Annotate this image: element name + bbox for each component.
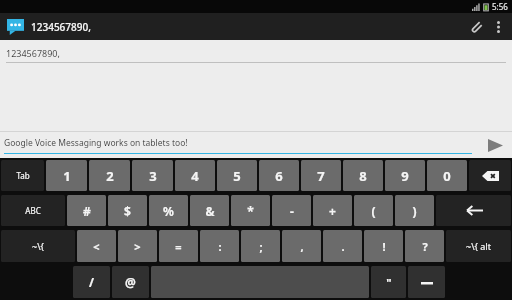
staticText: Tab [16,170,30,181]
staticText: " [386,275,392,290]
staticText: ? [422,239,428,254]
button[interactable]: , [282,230,321,262]
button[interactable]: % [149,195,188,226]
button[interactable]: / [73,266,110,298]
staticText: = [175,239,182,254]
button[interactable]: ; [241,230,280,262]
button[interactable]: 5 [217,160,257,191]
staticText: ! [382,239,386,254]
staticText: + [329,203,336,219]
staticText: * [247,203,254,219]
button[interactable]: 8 [343,160,383,191]
button[interactable]: ) [395,195,434,226]
button[interactable]: 4 [175,160,215,191]
staticText: / [89,274,94,290]
staticText: < [93,239,100,254]
staticText: . [341,239,345,254]
staticText: > [134,239,141,254]
staticText: : [218,239,222,254]
staticText: 6 [275,167,283,185]
staticText: , [300,239,304,254]
staticText: 9 [401,167,409,185]
button[interactable]: 7 [301,160,341,191]
staticText: 5:56 [492,1,508,12]
staticText: 1 [63,167,71,185]
button[interactable]: 3 [132,160,173,191]
button[interactable]: ! [364,230,403,262]
button[interactable]: Tab [1,160,44,191]
button[interactable]: $ [108,195,147,226]
staticText: ) [412,203,417,219]
button[interactable]: ABC [1,195,65,226]
staticText: 5 [233,167,241,185]
button[interactable]: More options [489,13,507,40]
staticText: ( [371,203,376,219]
staticText: Google Voice Messaging works on tablets … [4,137,188,149]
button[interactable]: 2 [89,160,130,191]
staticText: 7 [317,167,325,185]
staticText: 4 [191,167,199,185]
staticText: 8 [359,167,367,185]
button[interactable]: * [231,195,270,226]
button[interactable]: # [67,195,106,226]
button[interactable]: Attach [463,13,489,40]
button[interactable]: ( [354,195,393,226]
button[interactable]: & [190,195,229,226]
button[interactable]: 9 [385,160,425,191]
button[interactable]: @ [112,266,149,298]
button[interactable]: . [323,230,362,262]
button[interactable]: Send [478,132,512,158]
staticText: 3 [149,167,157,185]
button[interactable]: Backspace [469,160,511,191]
button[interactable]: 0 [427,160,467,191]
button[interactable]: 6 [259,160,299,191]
button[interactable]: < [77,230,116,262]
staticText: 1234567890, [6,47,60,59]
button[interactable]: ? [405,230,444,262]
button[interactable]: : [200,230,239,262]
button[interactable]: + [313,195,352,226]
button[interactable]: " [371,266,406,298]
staticText: @ [125,274,136,290]
button[interactable]: ~\{ alt [446,230,511,262]
button[interactable]: 1 [46,160,87,191]
button[interactable]: ~\{ [1,230,75,262]
staticText: & [205,203,215,219]
staticText: ~\{ [32,240,44,252]
staticText: $ [124,203,131,219]
staticText: 2 [106,167,114,185]
staticText: % [163,203,174,219]
staticText: ~\{ alt [466,240,491,252]
staticText: - [290,203,294,219]
staticText: 1234567890, [31,20,91,34]
button[interactable]: > [118,230,157,262]
staticText: ; [259,239,263,254]
staticText: # [83,203,91,219]
button[interactable]: - [272,195,311,226]
button[interactable]: Enter [436,195,511,226]
staticText: 0 [443,167,451,185]
button[interactable]: Messaging app icon [5,17,25,36]
button[interactable]: = [159,230,198,262]
staticText: ABC [25,205,41,216]
button[interactable]: Hide keyboard [408,266,445,298]
button[interactable]: Google Voice Messaging works on tablets … [4,137,472,149]
